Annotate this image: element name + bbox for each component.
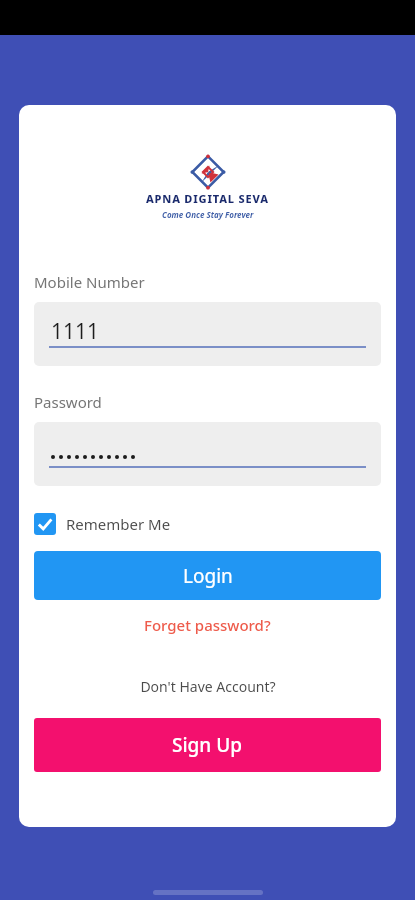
button[interactable]: Sign Up: [34, 718, 381, 772]
staticText: 1111: [51, 317, 100, 346]
staticText: Forget password?: [144, 615, 271, 635]
button[interactable]: [34, 422, 381, 486]
staticText: Sign Up: [172, 732, 243, 758]
staticText: Don't Have Account?: [140, 677, 276, 696]
button[interactable]: Forget password?: [136, 613, 279, 637]
button[interactable]: 1111: [34, 302, 381, 366]
staticText: Login: [183, 563, 233, 589]
staticText: Mobile Number: [34, 272, 145, 292]
staticText: APNA DIGITAL SEVA: [146, 191, 269, 206]
staticText: Password: [34, 392, 102, 412]
staticText: Remember Me: [66, 514, 171, 534]
staticText: Come Once Stay Forever: [162, 209, 254, 220]
other: Remember Me checkbox: [34, 513, 56, 535]
button[interactable]: Remember Me checkbox: [34, 513, 171, 535]
button[interactable]: Login: [34, 551, 381, 600]
